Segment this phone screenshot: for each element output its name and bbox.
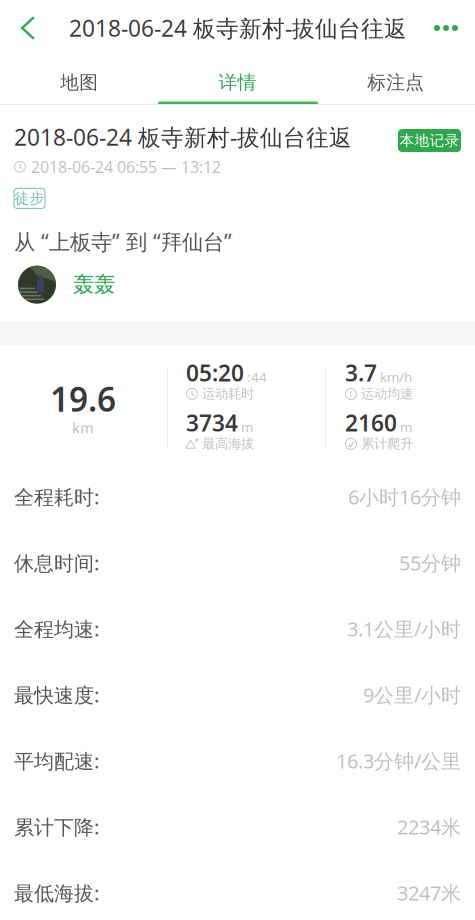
staticText: km [72,418,94,437]
staticText: 全程均速: [14,615,99,642]
staticText: 2234米 [397,813,461,840]
button[interactable]: 轰轰 [73,272,115,298]
button[interactable]: 平均配速: [0,728,475,794]
staticText: 运动均速 [361,386,413,402]
button[interactable]: More options [417,0,475,56]
staticText: 累计爬升 [361,436,413,452]
staticText: 徒步 [14,189,44,207]
staticText: 全程耗时: [14,483,99,510]
button[interactable]: 轰轰 profile photo [18,266,56,304]
staticText: 累计下降: [14,813,99,840]
button[interactable]: 详情 [158,58,317,106]
staticText: 平均配速: [14,747,99,774]
staticText: 标注点 [367,71,424,94]
button[interactable]: 最低海拔: [0,860,475,920]
staticText: 19.6 [50,377,116,421]
button[interactable]: Back [0,0,56,56]
button[interactable]: 地图 [0,58,158,106]
staticText: 运动耗时 [202,386,254,402]
staticText: 轰轰 [73,272,115,298]
staticText: m [400,418,412,436]
staticText: 2018-06-24 板寺新村-拔仙台往返 [14,122,352,152]
button[interactable]: 累计下降: [0,794,475,860]
staticText: 3.1公里/小时 [347,615,461,642]
staticText: 最低海拔: [14,879,99,906]
button[interactable]: 最快速度: [0,662,475,728]
staticText: 休息时间: [14,549,99,576]
staticText: 3734 [186,408,238,438]
button[interactable]: 标注点 [317,58,475,106]
staticText: 2018-06-24 06:55 — 13:12 [31,156,221,177]
staticText: m [241,418,253,436]
button[interactable]: 本地记录 [398,122,461,152]
staticText: km/h [380,368,412,386]
staticText: 详情 [218,71,256,94]
staticText: 2018-06-24 板寺新村-拔仙台往返 [69,13,407,43]
button[interactable]: 全程耗时: [0,464,475,530]
button[interactable]: 休息时间: [0,530,475,596]
staticText: 55分钟 [399,549,461,576]
staticText: :44 [247,368,267,386]
staticText: 本地记录 [399,131,459,149]
button[interactable]: 全程均速: [0,596,475,662]
staticText: 最快速度: [14,681,99,708]
staticText: 2160 [345,408,397,438]
staticText: 最高海拔 [202,436,254,452]
staticText: 从 “上板寺” 到 “拜仙台” [14,227,232,256]
staticText: 9公里/小时 [363,681,461,708]
staticText: 16.3分钟/公里 [336,747,461,774]
staticText: 地图 [60,71,98,94]
staticText: 3.7 [345,358,377,388]
staticText: 3247米 [397,879,461,906]
staticText: 6小时16分钟 [348,483,461,510]
staticText: 05:20 [186,358,244,388]
